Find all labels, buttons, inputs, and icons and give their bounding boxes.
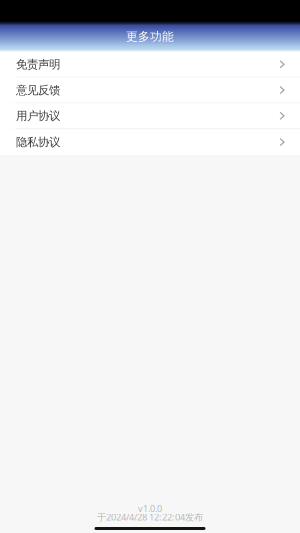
button[interactable]: 意见反馈 [0, 78, 300, 104]
staticText: 意见反馈 [16, 83, 60, 97]
staticText: 用户协议 [16, 109, 60, 123]
staticText: 免责声明 [16, 57, 60, 71]
staticText: 于2024/4/28 12:22:04发布 [97, 511, 203, 523]
staticText: 更多功能 [126, 29, 174, 44]
staticText: v1.0.0 [138, 502, 162, 515]
button[interactable]: 免责声明 [0, 52, 300, 78]
staticText: 隐私协议 [16, 135, 60, 149]
button[interactable]: 隐私协议 [0, 129, 300, 155]
button[interactable]: 用户协议 [0, 103, 300, 129]
